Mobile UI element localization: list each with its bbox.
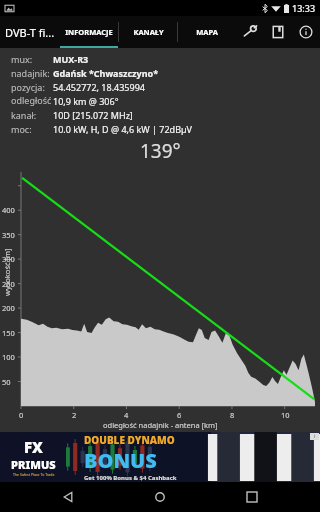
button[interactable]: Save [264, 18, 292, 46]
staticText: Get 100% Bonus & $4 Cashback [84, 474, 177, 482]
staticText: MAPA [196, 27, 218, 37]
staticText: 50 [2, 377, 11, 387]
staticText: PRIMUS [11, 457, 56, 472]
staticText: Gdańsk *Chwaszczyno* [53, 67, 159, 79]
staticText: 2 [72, 410, 77, 420]
button[interactable]: KANAŁY [119, 16, 177, 48]
staticText: odległość: [11, 94, 53, 108]
staticText: INFORMACJE [65, 27, 113, 37]
staticText: 150 [2, 328, 15, 338]
staticText: MUX-R3 [53, 53, 89, 65]
staticText: 139° [140, 138, 181, 164]
staticText: 8 [230, 410, 235, 420]
staticText: nadajnik: [11, 67, 50, 79]
staticText: moc: [11, 123, 32, 135]
staticText: The Safest Place To Trade [13, 472, 55, 477]
staticText: KANAŁY [133, 27, 164, 37]
staticText: 300 [2, 254, 15, 264]
staticText: 10D [215.072 MHz] [53, 109, 133, 121]
staticText: BONUS [84, 447, 157, 474]
staticText: i [314, 433, 316, 440]
button[interactable]: Back [44, 482, 92, 512]
button[interactable]: FX [0, 432, 320, 482]
staticText: DOUBLE DYNAMO [84, 433, 175, 447]
staticText: 400 [2, 205, 15, 215]
staticText: 13:33 [292, 2, 316, 14]
staticText: 250 [2, 279, 15, 289]
staticText: 4 [124, 410, 129, 420]
staticText: wysokość [m] [2, 248, 12, 296]
button[interactable]: MAPA [178, 16, 236, 48]
staticText: 54.452772, 18.435994 [53, 81, 145, 93]
staticText: mux: [11, 53, 33, 65]
staticText: odległość nadajnik - antena [km] [103, 420, 218, 430]
staticText: 10.0 kW, H, D @ 4,6 kW | 72dBµV [53, 123, 192, 135]
button[interactable]: Info [292, 18, 320, 46]
button[interactable]: Recents [228, 482, 276, 512]
button[interactable]: DVB-T fi... [0, 16, 60, 48]
staticText: pozycja: [11, 81, 45, 93]
staticText: FX [24, 437, 43, 457]
staticText: 6 [177, 410, 182, 420]
staticText: 10,9 km @ 306° [53, 95, 119, 107]
staticText: 100 [2, 352, 15, 362]
staticText: DVB-T fi... [5, 25, 55, 40]
button[interactable]: Settings [236, 18, 264, 46]
button[interactable]: INFORMACJE [60, 16, 118, 48]
staticText: 350 [2, 230, 15, 240]
staticText: kanał: [11, 109, 37, 121]
staticText: 0 [19, 410, 24, 420]
staticText: 10 [281, 410, 290, 420]
button[interactable]: Home [136, 482, 184, 512]
staticText: 200 [2, 303, 15, 313]
